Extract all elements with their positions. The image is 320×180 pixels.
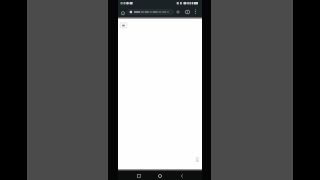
button[interactable]: New tab bbox=[174, 8, 181, 15]
button[interactable]: Home bbox=[155, 171, 165, 180]
button[interactable]: Switch tabs bbox=[184, 8, 191, 15]
button[interactable]: Home bbox=[118, 8, 127, 17]
button[interactable]: Recent apps bbox=[134, 171, 144, 180]
button[interactable]: Back bbox=[177, 171, 187, 180]
button[interactable] bbox=[127, 9, 174, 15]
button[interactable]: More options bbox=[192, 8, 199, 15]
